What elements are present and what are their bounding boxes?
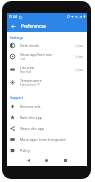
staticText: List xyxy=(20,57,26,61)
staticText: Share this app xyxy=(20,126,45,131)
button[interactable]: Home xyxy=(42,156,51,165)
button[interactable]: Show app/font size xyxy=(7,51,87,62)
button[interactable]: Temperature xyxy=(7,77,87,88)
staticText: Show app/font size xyxy=(20,52,53,57)
staticText: Version xyxy=(20,158,33,163)
button[interactable]: Policy xyxy=(7,145,87,156)
staticText: Dark mode xyxy=(20,43,39,48)
staticText: Settings xyxy=(10,35,24,40)
button[interactable]: Recents xyxy=(61,156,70,165)
button[interactable]: Rate this app xyxy=(7,112,87,123)
staticText: Normal xyxy=(20,70,32,74)
staticText: More apps from fritzgerald xyxy=(20,137,66,142)
button[interactable]: Back xyxy=(24,156,33,165)
staticText: Preferences xyxy=(21,23,46,29)
staticText: Support xyxy=(10,95,23,100)
staticText: List view xyxy=(20,65,35,70)
staticText: 11:24 xyxy=(9,15,18,19)
staticText: Policy xyxy=(20,148,30,153)
button[interactable]: Back xyxy=(7,20,19,32)
staticText: Rate this app xyxy=(20,115,43,120)
button[interactable]: List view xyxy=(7,64,87,75)
button[interactable]: Dark mode xyxy=(7,40,87,51)
staticText: Temperature xyxy=(20,78,42,83)
staticText: Remove ads xyxy=(20,104,41,109)
button[interactable]: More apps from fritzgerald xyxy=(7,134,87,145)
button[interactable]: Remove ads xyxy=(7,101,87,112)
button[interactable]: Version xyxy=(7,155,87,166)
button[interactable]: Share this app xyxy=(7,123,87,134)
staticText: Fahrenheit °F xyxy=(20,83,41,87)
